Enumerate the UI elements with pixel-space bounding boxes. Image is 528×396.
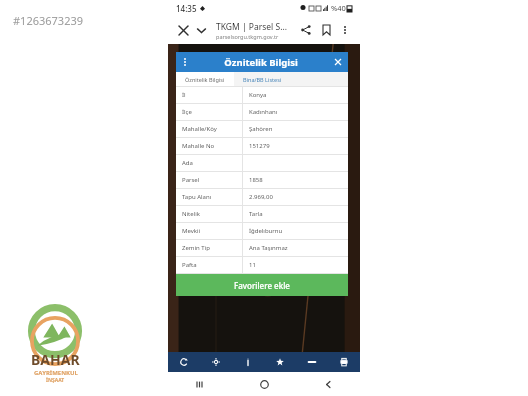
button[interactable]: Close [174,21,192,39]
staticText: Zemin Tip [182,244,242,252]
button[interactable]: Öznitelik Bilgisi [176,72,234,86]
button[interactable]: Favorite [264,352,296,372]
button[interactable]: Parsel [176,172,348,188]
staticText: İğdelıburnu [249,227,348,235]
staticText: Favorilere ekle [234,280,290,291]
button[interactable]: Menu [176,52,194,72]
button[interactable]: Mevkii [176,223,348,239]
button[interactable]: Menu [176,52,348,72]
button[interactable]: Nitelik [176,206,348,222]
button[interactable]: Locate [200,352,232,372]
button[interactable]: İlçe [176,104,348,120]
staticText: Şahören [249,125,348,133]
button[interactable]: İl [176,87,348,103]
staticText: Öznitelik Bilgisi [185,76,225,83]
button[interactable]: Pafta [176,257,348,273]
staticText: Öznitelik Bilgisi [194,56,328,69]
button[interactable]: Mahalle No [176,138,348,154]
staticText: Mahalle/Köy [182,125,242,133]
staticText: 14:35 [176,3,197,14]
staticText: İlçe [182,108,242,116]
staticText: Bina/BB Listesi [243,76,282,83]
button[interactable]: Share [296,20,316,40]
staticText: İNŞAAT [46,377,65,384]
staticText: Nitelik [182,210,242,218]
staticText: Parsel [182,176,242,184]
staticText: #1263673239 [13,13,84,28]
button[interactable]: Recents [168,372,232,396]
button[interactable]: Back [296,372,360,396]
staticText: Mahalle No [182,142,242,150]
staticText: 1858 [249,176,348,184]
button[interactable]: Home [232,372,296,396]
staticText: 2.969,00 [249,193,348,201]
button[interactable]: Bina/BB Listesi [234,72,290,86]
staticText: parselsorgu.tkgm.gov.tr [216,33,279,40]
button[interactable]: TKGM | Parsel S... [216,21,296,40]
staticText: GAYRİMENKUL [34,369,78,377]
button[interactable]: Measure [296,352,328,372]
button[interactable]: Ada [176,155,348,171]
button[interactable]: Close dialog [328,52,348,72]
button[interactable]: Print [328,352,360,372]
staticText: Ana Taşınmaz [249,244,348,252]
button[interactable]: Refresh [168,352,200,372]
staticText: Mevkii [182,227,242,235]
staticText: %40 [331,3,346,13]
button[interactable]: Bookmark [316,20,336,40]
button[interactable]: Favorilere ekle [176,274,348,296]
staticText: BAHAR [31,350,80,369]
staticText: Ada [182,159,242,167]
staticText: Kadınhanı [249,108,348,116]
button[interactable]: Tapu Alanı [176,189,348,205]
staticText: Konya [249,91,348,99]
staticText: 11 [249,261,348,269]
button[interactable]: Info [232,352,264,372]
button[interactable]: More options [336,21,354,39]
staticText: Tapu Alanı [182,193,242,201]
staticText: Pafta [182,261,242,269]
button[interactable]: Zemin Tip [176,240,348,256]
staticText: 151279 [249,142,348,150]
button[interactable]: Mahalle/Köy [176,121,348,137]
staticText: İl [182,91,242,99]
button[interactable]: Expand [192,21,210,39]
staticText: Tarla [249,210,348,218]
staticText: TKGM | Parsel S... [216,21,288,33]
